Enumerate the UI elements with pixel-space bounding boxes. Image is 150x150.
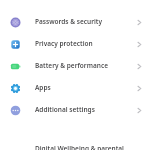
button[interactable]: Additional settings (0, 99, 150, 121)
staticText: Additional settings (35, 105, 95, 114)
staticText: Digital Wellbeing & parental (35, 144, 124, 150)
staticText: Apps (35, 83, 51, 92)
button[interactable]: Privacy protection (0, 33, 150, 55)
staticText: Privacy protection (35, 39, 93, 48)
button[interactable]: Digital Wellbeing & parental (0, 144, 150, 150)
button[interactable]: Apps (0, 77, 150, 99)
staticText: Passwords & security (35, 17, 103, 26)
button[interactable]: Battery & performance (0, 55, 150, 77)
staticText: Battery & performance (35, 61, 108, 70)
button[interactable]: Passwords & security (0, 11, 150, 33)
